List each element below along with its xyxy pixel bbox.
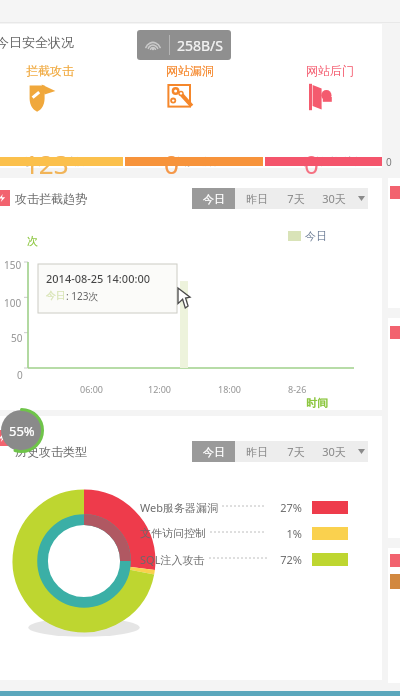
button[interactable]: 网站漏洞	[128, 24, 264, 164]
staticText: 今日	[203, 192, 225, 206]
staticText: 今日	[305, 229, 327, 243]
button[interactable]: 今日	[192, 441, 235, 462]
staticText: : 123次	[66, 289, 99, 303]
button[interactable]: SQL注入攻击	[140, 549, 348, 569]
button[interactable]: Network speed	[137, 30, 231, 60]
button[interactable]: 文件访问控制	[140, 523, 348, 543]
staticText: 网站后门	[306, 63, 354, 78]
staticText: Web服务器漏洞	[140, 500, 218, 515]
button[interactable]: 昨日	[235, 441, 278, 462]
staticText: 7天	[287, 191, 305, 206]
staticText: 7天	[287, 444, 305, 459]
button[interactable]: 今日	[192, 188, 235, 209]
staticText: 历史攻击类型	[15, 444, 87, 459]
staticText: 72%	[270, 552, 302, 567]
staticText: 27%	[270, 500, 302, 515]
staticText: 较昨天同时段：	[24, 155, 94, 168]
staticText: 100	[4, 296, 22, 310]
staticText: 0	[17, 368, 23, 382]
staticText: 昨日	[246, 192, 268, 206]
button[interactable]: 30天	[314, 441, 354, 462]
staticText: SQL注入攻击	[140, 552, 205, 567]
staticText: 0	[246, 155, 252, 169]
button[interactable]: 昨日	[235, 188, 278, 209]
staticText: 今日	[46, 289, 66, 302]
staticText: 18:00	[218, 383, 242, 395]
staticText: 文件访问控制	[140, 526, 206, 540]
staticText: 0	[386, 155, 392, 169]
staticText: 今日	[203, 445, 225, 459]
staticText: 0	[304, 146, 319, 181]
staticText: 阻断后门访问：	[304, 155, 374, 168]
button[interactable]: 30天	[314, 188, 354, 209]
staticText: 次	[27, 234, 38, 248]
button[interactable]: 7天	[278, 441, 314, 462]
staticText: 30天	[322, 444, 346, 459]
staticText: 正在修复漏洞：	[164, 155, 234, 168]
button[interactable]: 拦截攻击	[0, 24, 124, 164]
staticText: 123	[24, 146, 69, 181]
staticText: 30天	[322, 191, 346, 206]
button[interactable]: 网站后门	[268, 24, 400, 164]
staticText: 昨日	[246, 445, 268, 459]
staticText: 0	[164, 146, 179, 181]
staticText: 网站漏洞	[166, 63, 214, 78]
staticText: 今日安全状况	[0, 34, 74, 50]
staticText: 2014-08-25 14:00:00	[46, 271, 150, 286]
button[interactable]: More options	[354, 188, 368, 209]
button[interactable]: More options	[354, 441, 368, 462]
button[interactable]: Web服务器漏洞	[140, 497, 348, 517]
button[interactable]: Progress 55 percent	[0, 408, 44, 453]
staticText: 55%	[9, 422, 35, 440]
staticText: 150	[4, 258, 22, 272]
button[interactable]: 7天	[278, 188, 314, 209]
staticText: 1%	[270, 526, 302, 541]
staticText: 攻击拦截趋势	[15, 191, 87, 206]
staticText: 8-26	[288, 383, 307, 395]
staticText: 50	[11, 331, 23, 345]
staticText: 拦截攻击	[26, 63, 74, 78]
staticText: 06:00	[80, 383, 104, 395]
staticText: 258B/S	[177, 36, 224, 55]
staticText: 12:00	[148, 383, 172, 395]
staticText: 时间	[306, 396, 328, 410]
